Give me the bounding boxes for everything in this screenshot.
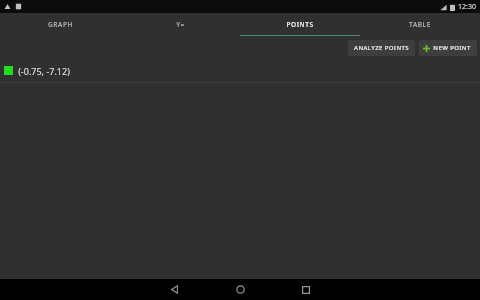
button[interactable]: Home xyxy=(225,279,255,300)
button[interactable]: POINTS xyxy=(240,13,360,36)
button[interactable]: GRAPH xyxy=(0,13,120,36)
staticText: TABLE xyxy=(409,20,431,29)
staticText: NEW POINT xyxy=(433,44,471,52)
button[interactable]: NEW POINT xyxy=(419,40,477,56)
staticText: (-0.75, -7.12) xyxy=(18,65,70,77)
staticText: Y= xyxy=(176,20,185,29)
staticText: POINTS xyxy=(286,20,314,29)
staticText: 12:30 xyxy=(458,2,476,12)
button[interactable]: Back xyxy=(159,279,189,300)
staticText: GRAPH xyxy=(48,20,73,29)
staticText: ANALYZE POINTS xyxy=(354,44,409,52)
button[interactable]: TABLE xyxy=(360,13,480,36)
button[interactable]: (-0.75, -7.12) xyxy=(0,59,480,82)
button[interactable]: Recents xyxy=(291,279,321,300)
button[interactable]: ANALYZE POINTS xyxy=(348,40,415,56)
button[interactable]: Y= xyxy=(120,13,240,36)
